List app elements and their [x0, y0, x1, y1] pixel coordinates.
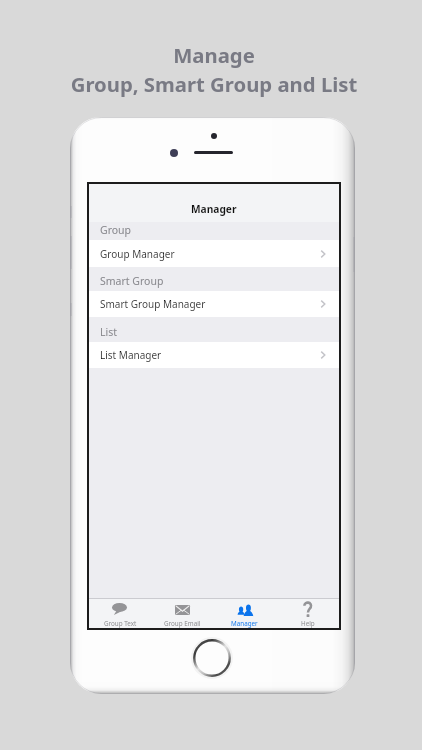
staticText: Help: [301, 619, 315, 628]
staticText: List Manager: [100, 348, 162, 362]
staticText: Smart Group: [100, 274, 164, 288]
staticText: List: [100, 325, 118, 339]
staticText: Group: [100, 223, 132, 237]
staticText: Group Text: [104, 619, 137, 628]
staticText: Manager: [191, 202, 237, 216]
button[interactable]: Group Email: [151, 599, 213, 628]
button[interactable]: List Manager: [89, 342, 339, 368]
staticText: Manager: [231, 619, 258, 628]
staticText: Group Manager: [100, 247, 175, 261]
button[interactable]: Smart Group Manager: [89, 291, 339, 317]
staticText: Manage Group, Smart Group and List: [3, 41, 422, 98]
staticText: Group Email: [164, 619, 201, 628]
button[interactable]: Group Manager: [89, 240, 339, 267]
staticText: Smart Group Manager: [100, 297, 206, 311]
button[interactable]: Manager: [213, 599, 276, 628]
button[interactable]: Group Text: [89, 599, 151, 628]
button[interactable]: Help: [276, 599, 339, 628]
